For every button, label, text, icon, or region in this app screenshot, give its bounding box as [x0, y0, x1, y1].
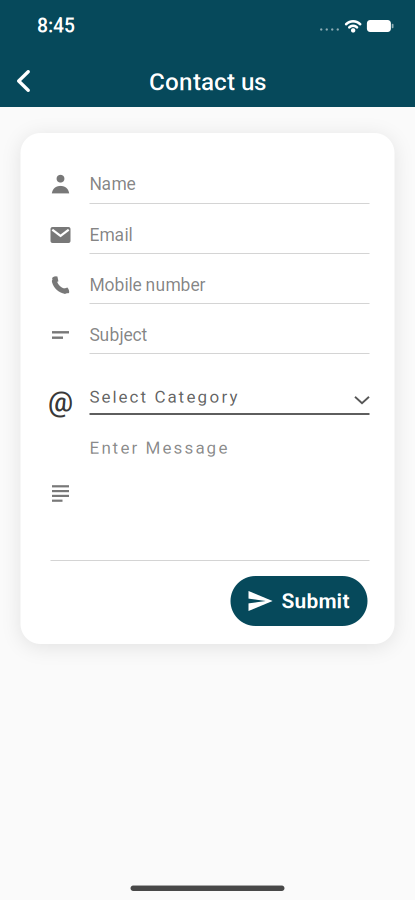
button[interactable]: Subject [20, 304, 394, 354]
button[interactable]: Email [20, 204, 394, 254]
staticText: @ [48, 386, 73, 418]
staticText: Name [89, 174, 135, 194]
staticText: E n t e r M e s s a g e [89, 438, 227, 458]
button[interactable]: @ [20, 354, 394, 415]
button[interactable]: E n t e r M e s s a g e [20, 415, 394, 561]
button[interactable]: Mobile number [20, 254, 394, 304]
staticText: Email [89, 225, 132, 245]
staticText: Contact us [149, 68, 266, 96]
staticText: Subject [89, 325, 147, 345]
button[interactable]: Back [0, 47, 43, 107]
staticText: S e l e c t C a t e g o r y [89, 387, 237, 407]
staticText: 8:45 [37, 15, 75, 37]
staticText: Mobile number [89, 275, 205, 295]
button[interactable]: Submit [230, 576, 367, 626]
staticText: Submit [281, 589, 349, 613]
button[interactable]: Name [20, 133, 394, 204]
